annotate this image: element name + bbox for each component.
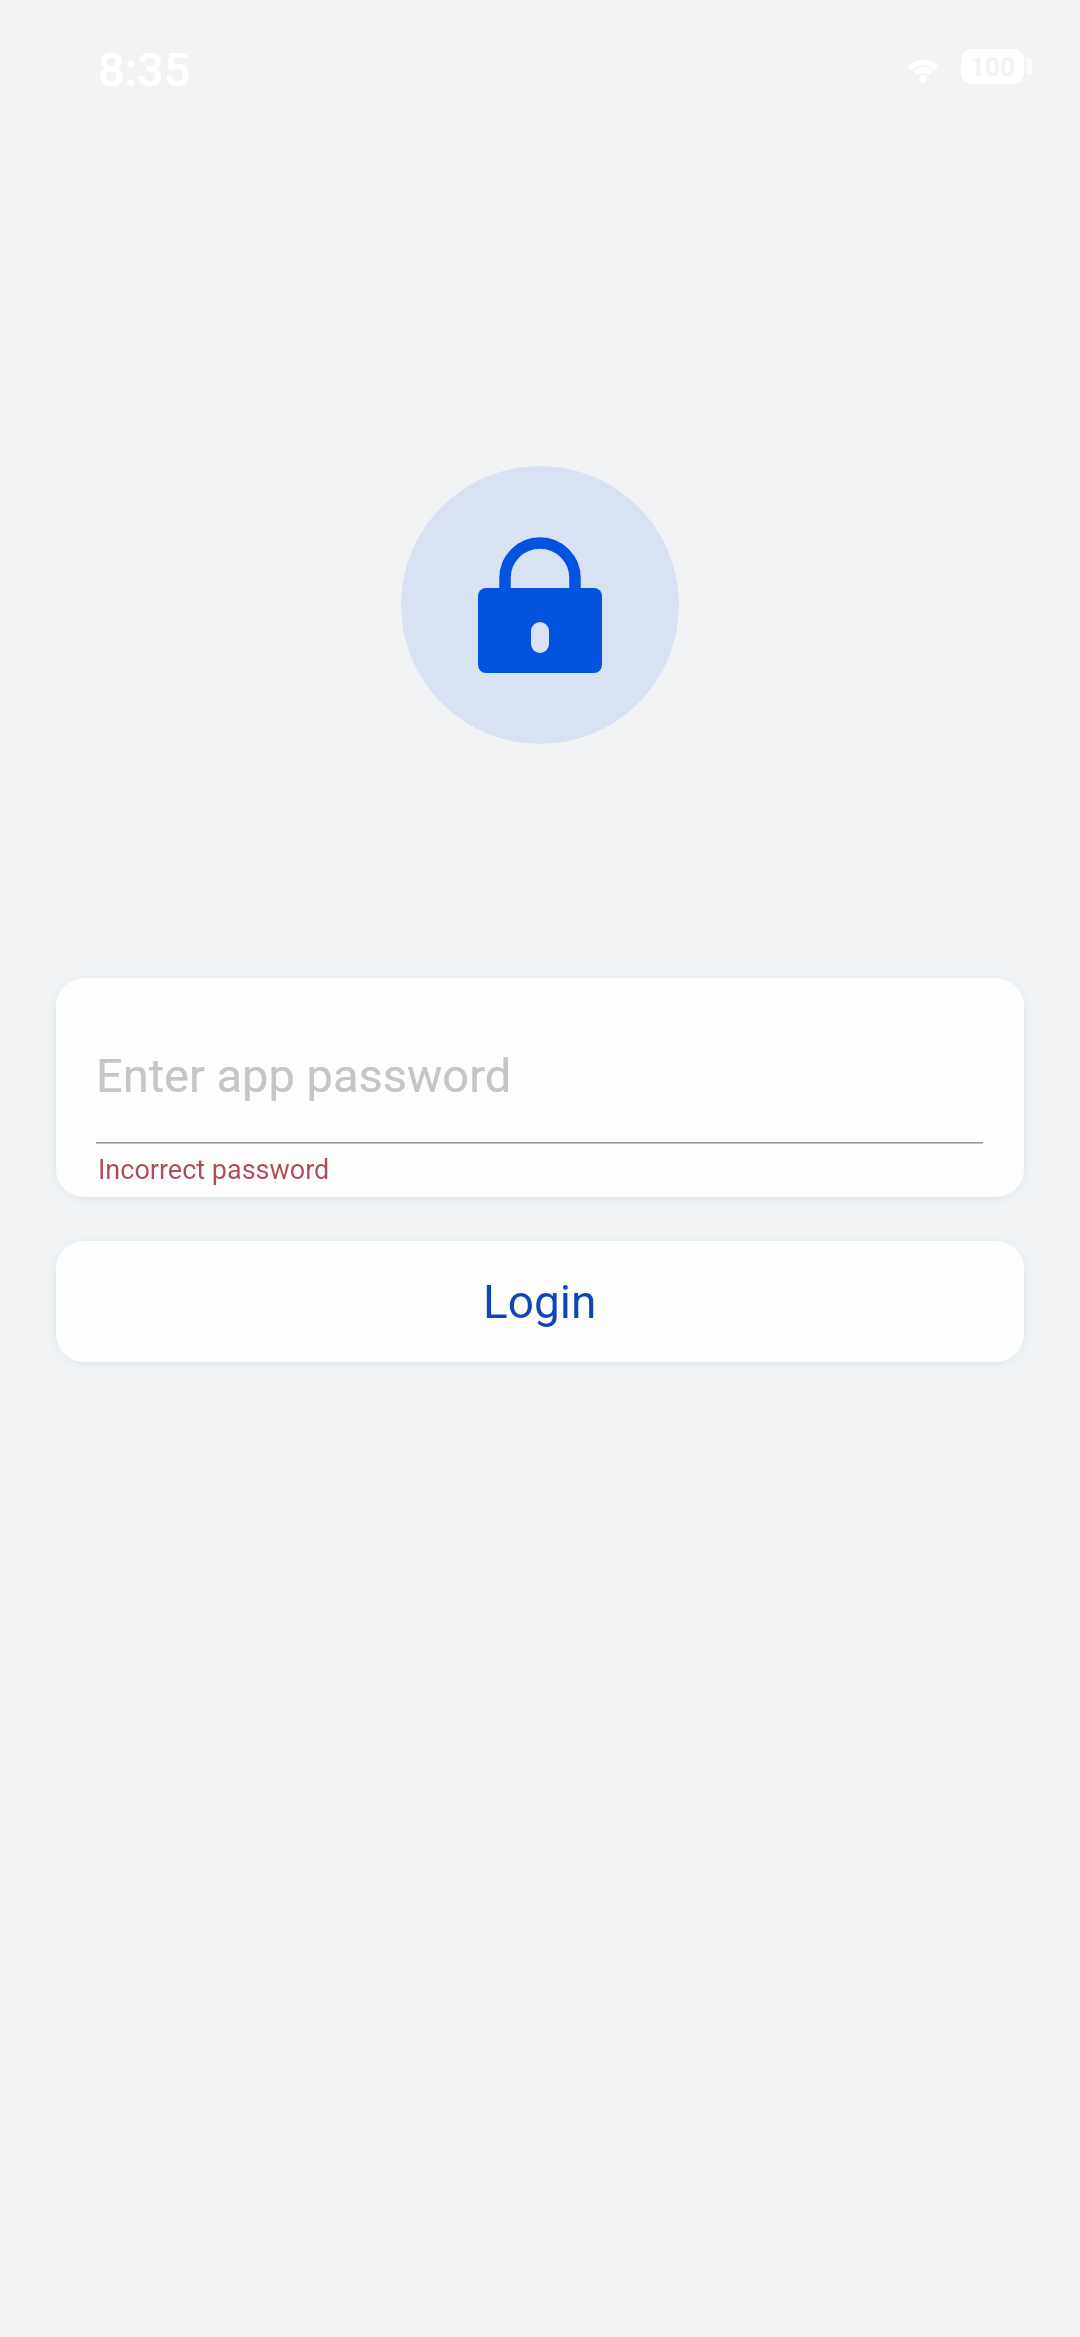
button[interactable]: App password field (56, 978, 1024, 1197)
staticText: 100 (970, 52, 1015, 82)
other: Wi-Fi (903, 48, 943, 84)
staticText: Incorrect password (98, 1154, 330, 1186)
button[interactable]: Login (56, 1241, 1024, 1362)
staticText: Login (483, 1275, 597, 1329)
staticText: Enter app password (96, 1048, 512, 1103)
other: Battery 100 percent (961, 49, 1024, 84)
staticText: 8:35 (98, 42, 191, 97)
other: Locked (478, 536, 602, 673)
